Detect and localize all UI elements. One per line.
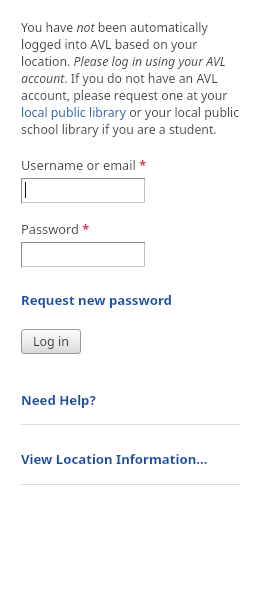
- staticText: View Location Information...: [21, 450, 208, 468]
- button[interactable]: View Location Information...: [21, 450, 208, 468]
- staticText: Request new password: [21, 291, 172, 309]
- staticText: You have not been automatically logged i…: [21, 19, 240, 138]
- staticText: Log in: [33, 333, 70, 350]
- staticText: Need Help?: [21, 391, 96, 409]
- staticText: Username or email *: [21, 156, 147, 173]
- button[interactable]: Log in: [21, 329, 81, 354]
- button[interactable]: Request new password: [21, 291, 172, 309]
- button[interactable]: Need Help?: [21, 391, 96, 409]
- staticText: Password *: [21, 220, 90, 237]
- button[interactable]: Username or email field: [21, 178, 145, 203]
- button[interactable]: Password field: [21, 242, 145, 267]
